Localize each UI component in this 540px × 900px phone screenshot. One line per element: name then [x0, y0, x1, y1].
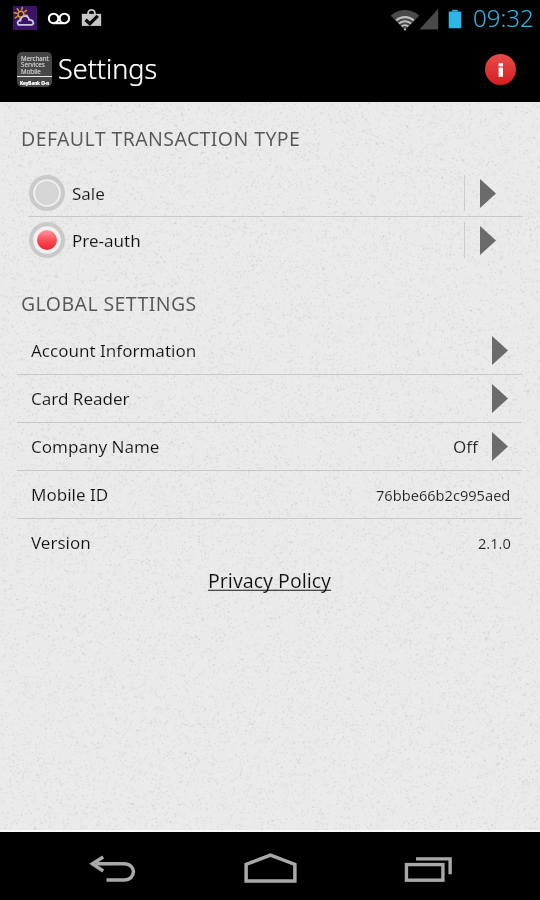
staticText: Sale	[72, 182, 105, 205]
staticText: 76bbe66b2c995aed	[376, 485, 511, 505]
button[interactable]: Mobile ID	[0, 471, 540, 518]
staticText: DEFAULT TRANSACTION TYPE	[21, 125, 301, 152]
button[interactable]: Version	[0, 519, 540, 566]
staticText: Card Reader	[31, 387, 130, 410]
staticText: Company Name	[31, 435, 160, 458]
button[interactable]: Pre-auth	[0, 217, 540, 263]
button[interactable]: Company Name	[0, 423, 540, 470]
button[interactable]: Home	[180, 832, 360, 900]
staticText: Off	[453, 435, 478, 458]
staticText: Version	[31, 531, 91, 554]
button[interactable]: Card Reader	[0, 375, 540, 422]
staticText: Settings	[58, 50, 158, 87]
button[interactable]: Account Information	[0, 327, 540, 374]
button[interactable]: Recent apps	[360, 832, 540, 900]
staticText: Merchant Services Mobile	[21, 54, 49, 76]
staticText: Mobile ID	[31, 483, 109, 506]
staticText: Pre-auth	[72, 229, 141, 252]
staticText: Privacy Policy	[208, 567, 332, 594]
button[interactable]: Privacy Policy	[196, 562, 344, 599]
staticText: Account Information	[31, 339, 197, 362]
staticText: KeyBank O-n	[20, 80, 50, 86]
staticText: 2.1.0	[478, 533, 511, 553]
button[interactable]: Back	[0, 832, 180, 900]
button[interactable]: Sale	[0, 170, 540, 216]
staticText: 09:32	[473, 1, 534, 34]
staticText: GLOBAL SETTINGS	[21, 290, 197, 317]
button[interactable]: Info	[485, 54, 516, 85]
